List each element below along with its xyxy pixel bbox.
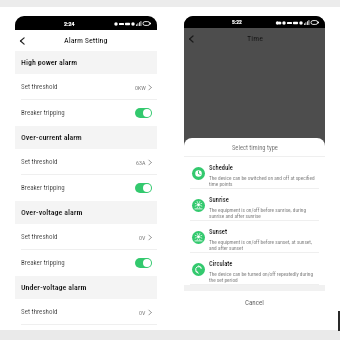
- button[interactable]: Breaker tripping: [15, 100, 157, 126]
- staticText: The equipment is on/off before sunrise, …: [209, 207, 316, 219]
- staticText: Set threshold: [21, 308, 58, 316]
- button[interactable]: Set threshold: [15, 74, 157, 100]
- button[interactable]: Set threshold: [15, 299, 157, 325]
- staticText: 0KW: [135, 84, 146, 91]
- staticText: Sunset: [209, 228, 227, 236]
- button[interactable]: Sunrise: [184, 189, 325, 221]
- button[interactable]: Circulate: [184, 253, 325, 285]
- staticText: Set threshold: [21, 158, 58, 166]
- staticText: Breaker tripping: [21, 109, 65, 117]
- button[interactable]: Set threshold: [15, 224, 157, 250]
- button[interactable]: Cancel: [184, 291, 325, 316]
- staticText: The equipment is on/off before sunset, a…: [209, 239, 316, 251]
- staticText: Under-voltage alarm: [21, 283, 87, 292]
- staticText: Over-current alarm: [21, 133, 82, 142]
- staticText: The device can be turned on/off repeated…: [209, 271, 316, 283]
- button[interactable]: Back: [16, 35, 28, 47]
- button[interactable]: Breaker tripping: [15, 175, 157, 201]
- staticText: Set threshold: [21, 233, 58, 241]
- staticText: Breaker tripping: [21, 259, 65, 267]
- staticText: 0V: [139, 309, 146, 316]
- staticText: Cancel: [245, 299, 264, 307]
- button[interactable]: Sunset: [184, 221, 325, 253]
- staticText: 5:22: [232, 19, 242, 25]
- staticText: Sunrise: [209, 196, 229, 204]
- staticText: Set threshold: [21, 83, 58, 91]
- button[interactable]: Breaker tripping: [15, 250, 157, 276]
- staticText: Time: [247, 34, 263, 43]
- staticText: Select timing type: [232, 144, 278, 152]
- staticText: Schedule: [209, 164, 233, 172]
- staticText: High power alarm: [21, 58, 78, 67]
- staticText: Breaker tripping: [21, 184, 65, 192]
- button[interactable]: Set threshold: [15, 149, 157, 175]
- staticText: Circulate: [209, 260, 233, 268]
- staticText: 63A: [136, 159, 146, 166]
- staticText: 0V: [139, 234, 146, 241]
- button[interactable]: Back: [185, 33, 197, 45]
- staticText: Over-voltage alarm: [21, 208, 83, 217]
- staticText: Alarm Setting: [64, 36, 108, 45]
- staticText: The device can be switched on and off at…: [209, 175, 316, 187]
- staticText: 2:24: [64, 20, 75, 27]
- button[interactable]: Schedule: [184, 157, 325, 189]
